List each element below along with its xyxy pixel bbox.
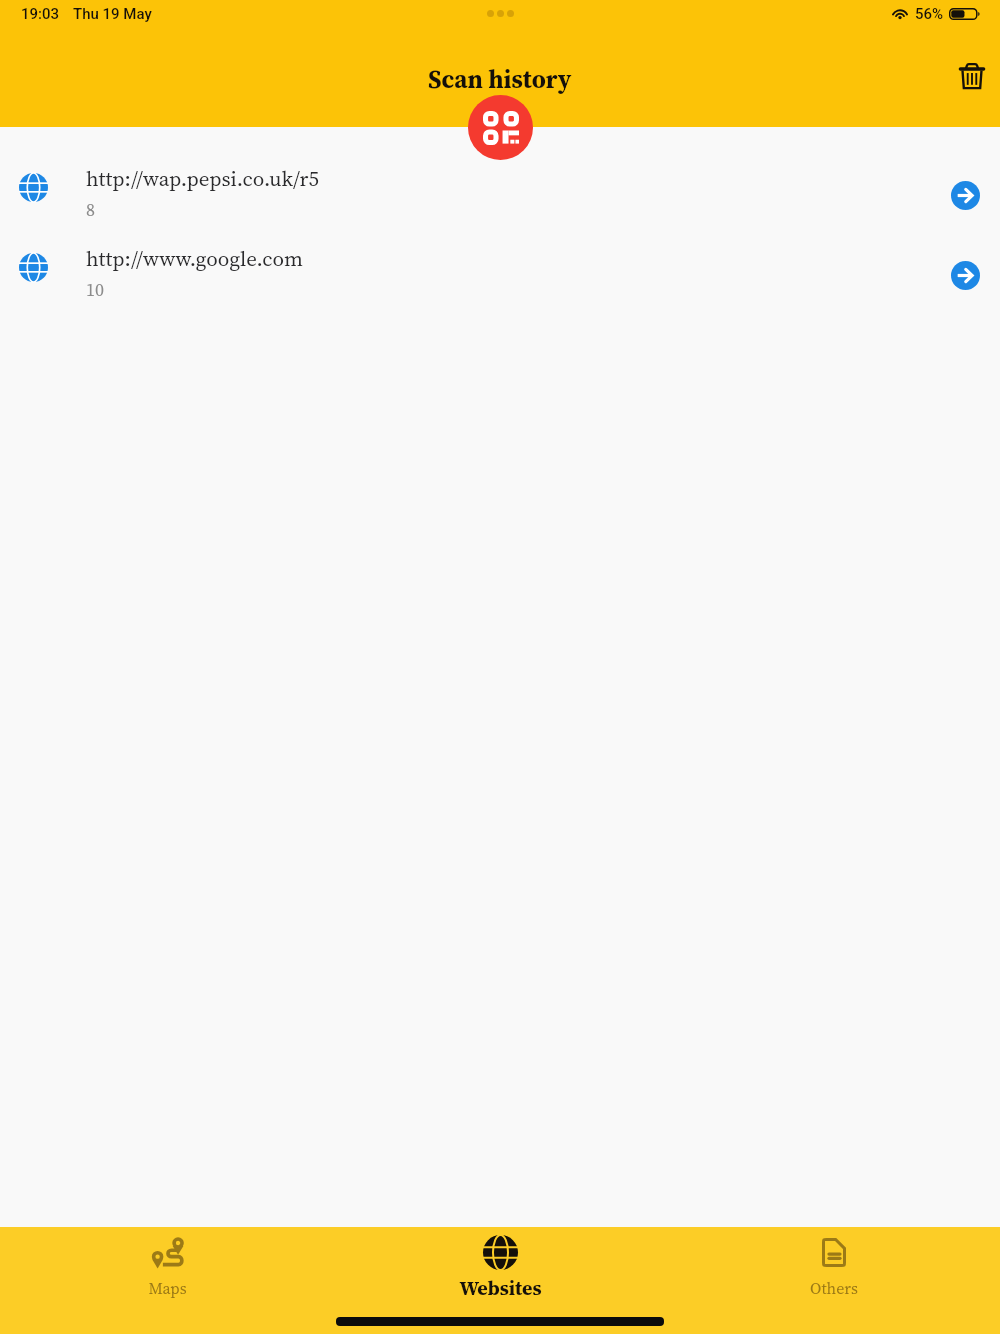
button[interactable]: http://www.google.com [0, 235, 1000, 315]
button[interactable]: Scan QR code [468, 95, 533, 160]
staticText: 10 [86, 277, 104, 302]
staticText: Thu 19 May [73, 5, 152, 23]
button[interactable]: Maps [0, 1227, 334, 1305]
button[interactable]: Delete history [944, 49, 1000, 105]
staticText: Maps [148, 1277, 187, 1299]
staticText: Scan history [428, 62, 572, 96]
button[interactable]: Others [667, 1227, 1000, 1305]
staticText: 19:03 [21, 5, 60, 23]
button[interactable]: http://wap.pepsi.co.uk/r5 [0, 155, 1000, 235]
staticText: http://www.google.com [86, 244, 303, 273]
button[interactable]: Websites [334, 1227, 667, 1305]
staticText: http://wap.pepsi.co.uk/r5 [86, 164, 319, 193]
staticText: 56% [915, 5, 944, 23]
staticText: Websites [459, 1274, 542, 1301]
staticText: Others [810, 1277, 858, 1299]
staticText: 8 [86, 197, 95, 222]
